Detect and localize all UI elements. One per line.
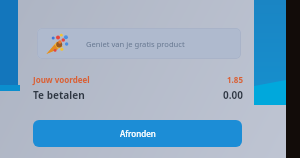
staticText: 0.00 xyxy=(223,88,243,102)
staticText: Geniet van je gratis product xyxy=(86,39,185,49)
staticText: 1.85 xyxy=(227,74,243,85)
staticText: Te betalen xyxy=(33,88,85,102)
staticText: Afronden xyxy=(120,128,156,139)
button[interactable]: Geniet van je gratis product xyxy=(37,28,241,59)
button[interactable]: Afronden xyxy=(33,120,242,147)
staticText: Jouw voordeel xyxy=(33,74,90,85)
